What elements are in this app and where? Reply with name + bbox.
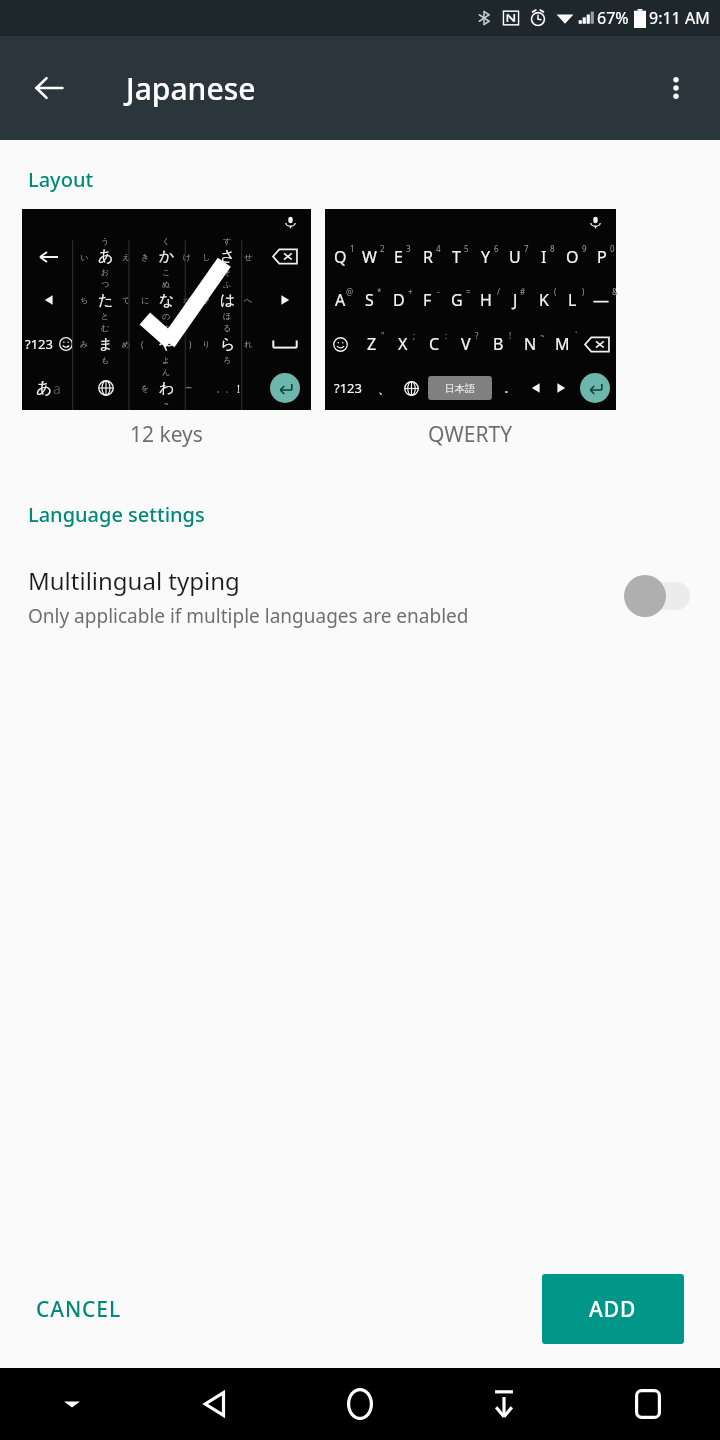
button[interactable]: Home <box>288 1368 432 1440</box>
staticText: 9:11 AM <box>649 7 710 29</box>
staticText: 3 <box>406 243 411 254</box>
staticText: 0 <box>610 243 615 254</box>
staticText: ?123 <box>25 335 53 353</box>
staticText: + <box>408 286 413 297</box>
button[interactable]: ADD <box>542 1274 684 1344</box>
staticText: R <box>423 246 433 268</box>
staticText: ん <box>162 367 171 377</box>
staticText: : <box>445 330 448 341</box>
button[interactable]: Back <box>18 57 80 119</box>
staticText: は <box>220 291 236 310</box>
staticText: ま <box>98 335 114 354</box>
staticText: B <box>493 333 504 355</box>
button[interactable]: Download <box>432 1368 576 1440</box>
staticText: 。 <box>504 381 515 395</box>
staticText: ) <box>582 286 585 297</box>
staticText: い <box>80 252 89 262</box>
staticText: そ <box>223 267 232 277</box>
staticText: さ <box>220 247 236 266</box>
button[interactable]: More options <box>648 60 704 116</box>
staticText: W <box>362 246 377 268</box>
staticText: き <box>141 252 150 262</box>
staticText: あ <box>36 378 53 398</box>
staticText: う <box>101 236 110 246</box>
staticText: * <box>377 286 382 297</box>
staticText: け <box>183 252 192 262</box>
staticText: # <box>520 286 526 297</box>
staticText: か <box>159 247 175 266</box>
staticText: Q <box>334 246 347 268</box>
staticText: ` <box>575 330 578 341</box>
staticText: つ <box>101 279 110 289</box>
staticText: む <box>101 323 110 333</box>
button[interactable]: あ <box>22 209 311 449</box>
staticText: に <box>141 295 150 305</box>
staticText: ち <box>80 295 89 305</box>
staticText: 、 <box>225 383 234 394</box>
staticText: — <box>593 289 610 311</box>
staticText: T <box>452 246 461 268</box>
staticText: 7 <box>524 243 529 254</box>
button[interactable]: Multilingual typing <box>0 554 720 638</box>
staticText: / <box>497 286 500 297</box>
staticText: L <box>568 289 577 311</box>
staticText: の <box>162 311 171 321</box>
button[interactable]: Back <box>144 1368 288 1440</box>
staticText: ADD <box>589 1295 637 1324</box>
staticText: と <box>101 311 110 321</box>
staticText: 2 <box>380 243 385 254</box>
staticText: J <box>513 289 518 311</box>
staticText: て <box>122 295 131 305</box>
staticText: P <box>597 246 607 268</box>
button[interactable]: Q <box>325 209 616 449</box>
staticText: E <box>394 246 403 268</box>
staticText: ( <box>554 286 557 297</box>
staticText: し <box>202 252 211 262</box>
staticText: ~ <box>540 330 545 341</box>
staticText: わ <box>159 379 175 398</box>
button[interactable]: Recent apps <box>576 1368 720 1440</box>
staticText: 9 <box>582 243 587 254</box>
staticText: あ <box>98 247 114 266</box>
staticText: 、 <box>378 381 390 396</box>
staticText: O <box>566 246 579 268</box>
button[interactable]: CANCEL <box>18 1283 140 1336</box>
staticText: H <box>480 289 492 311</box>
staticText: N <box>524 333 537 355</box>
staticText: M <box>555 333 570 355</box>
staticText: Multilingual typing <box>28 564 240 597</box>
staticText: れ <box>244 339 253 349</box>
staticText: @ <box>346 286 354 297</box>
staticText: ? <box>475 330 479 341</box>
button[interactable]: Hide keyboard <box>0 1368 144 1440</box>
staticText: V <box>461 333 471 355</box>
staticText: Only applicable if multiple languages ar… <box>28 603 469 629</box>
staticText: ! <box>509 330 512 341</box>
staticText: こ <box>162 267 171 277</box>
staticText: な <box>159 291 175 310</box>
staticText: X <box>398 333 408 355</box>
staticText: を <box>141 383 150 393</box>
staticText: G <box>451 289 463 311</box>
staticText: Japanese <box>126 68 256 109</box>
staticText: Language settings <box>28 501 205 528</box>
staticText: 5 <box>464 243 469 254</box>
staticText: よ <box>162 355 171 365</box>
staticText: Layout <box>28 166 94 193</box>
staticText: ~ <box>164 398 169 409</box>
staticText: 12 keys <box>130 420 203 449</box>
staticText: ー <box>184 383 192 393</box>
staticText: ひ <box>202 295 211 305</box>
staticText: え <box>122 252 131 262</box>
staticText: み <box>80 339 89 349</box>
staticText: ! <box>237 381 240 396</box>
staticText: ほ <box>223 311 232 321</box>
staticText: お <box>101 267 110 277</box>
staticText: C <box>429 333 440 355</box>
staticText: り <box>202 339 211 349</box>
staticText: 4 <box>436 243 441 254</box>
staticText: ら <box>220 335 236 354</box>
staticText: 。 <box>216 383 225 394</box>
staticText: 6 <box>494 243 499 254</box>
staticText: 1 <box>350 243 355 254</box>
